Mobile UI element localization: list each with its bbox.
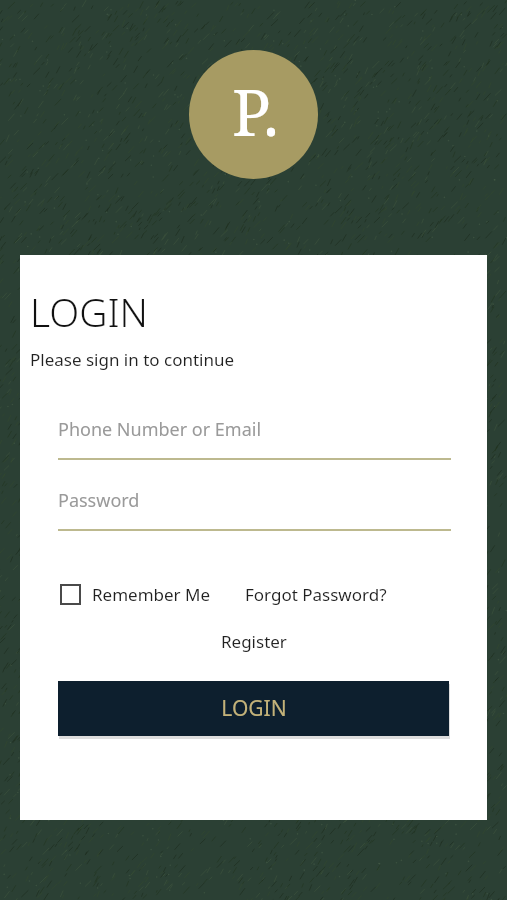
staticText: LOGIN — [221, 694, 287, 723]
staticText: Password — [58, 488, 140, 513]
button[interactable]: Forgot Password? — [245, 583, 387, 606]
staticText: LOGIN — [30, 285, 149, 338]
button[interactable]: Register — [215, 628, 293, 655]
staticText: Forgot Password? — [245, 583, 387, 606]
button[interactable]: Remember Me — [60, 583, 211, 606]
staticText: Register — [221, 630, 287, 653]
staticText: Please sign in to continue — [30, 348, 235, 371]
staticText: Remember Me — [92, 583, 211, 606]
staticText: Phone Number or Email — [58, 417, 262, 442]
button[interactable]: Phone Number or Email — [58, 417, 451, 460]
staticText: P. — [232, 68, 279, 155]
button[interactable]: LOGIN — [58, 681, 449, 736]
button[interactable]: Password — [58, 488, 451, 531]
